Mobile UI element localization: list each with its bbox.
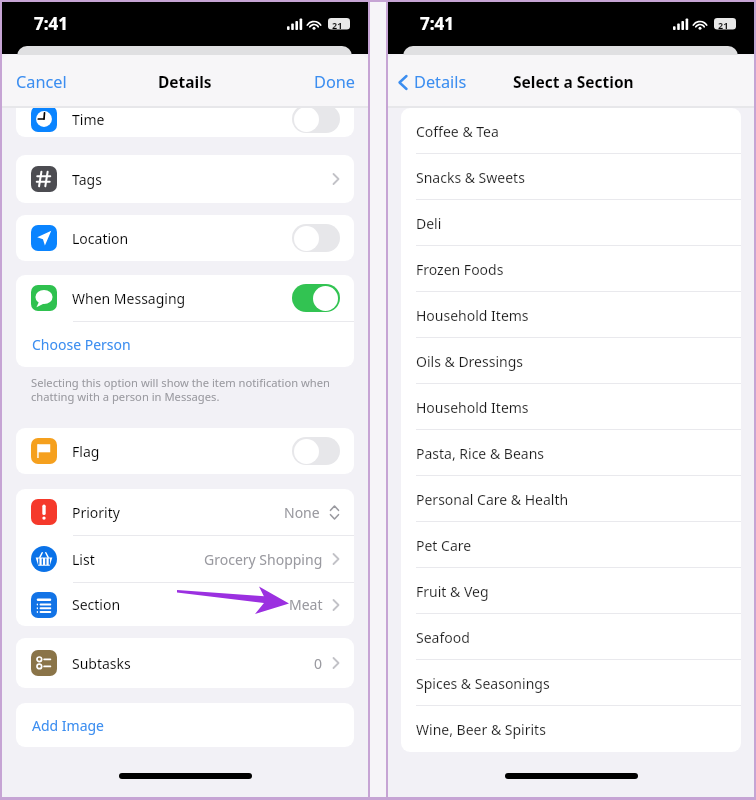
staticText: When Messaging: [72, 289, 186, 308]
staticText: Seafood: [416, 628, 470, 647]
staticText: Cancel: [16, 71, 67, 93]
button[interactable]: Snacks & Sweets: [401, 154, 741, 200]
button[interactable]: Done: [298, 61, 370, 103]
button[interactable]: Cancel: [0, 61, 83, 103]
button[interactable]: Switch off: [292, 224, 340, 252]
button[interactable]: Switch off: [292, 437, 340, 465]
staticText: List: [72, 550, 95, 569]
button[interactable]: Switch on: [292, 284, 340, 312]
staticText: 7:41: [34, 12, 68, 35]
staticText: 21: [718, 19, 729, 31]
button[interactable]: Spices & Seasonings: [401, 660, 741, 706]
staticText: Time: [72, 110, 105, 129]
staticText: Choose Person: [32, 335, 131, 354]
staticText: Section: [72, 595, 121, 614]
button[interactable]: Subtasks: [16, 638, 354, 688]
staticText: Spices & Seasonings: [416, 674, 550, 693]
button[interactable]: Switch off: [292, 108, 340, 133]
button[interactable]: Pet Care: [401, 522, 741, 568]
staticText: Snacks & Sweets: [416, 168, 525, 187]
button[interactable]: Coffee & Tea: [401, 108, 741, 154]
staticText: Location: [72, 229, 129, 248]
button[interactable]: Tags: [16, 155, 354, 203]
staticText: None: [284, 503, 320, 522]
button[interactable]: Seafood: [401, 614, 741, 660]
staticText: Household Items: [416, 398, 529, 417]
staticText: Add Image: [32, 716, 105, 735]
button[interactable]: Fruit & Veg: [401, 568, 741, 614]
staticText: Selecting this option will show the item…: [31, 375, 331, 405]
button[interactable]: Pasta, Rice & Beans: [401, 430, 741, 476]
staticText: Meat: [289, 595, 323, 614]
button[interactable]: Household Items: [401, 384, 741, 430]
staticText: Pet Care: [416, 536, 472, 555]
staticText: Coffee & Tea: [416, 122, 499, 141]
staticText: Details: [414, 71, 467, 93]
staticText: 0: [314, 654, 323, 673]
staticText: Details: [158, 71, 212, 92]
button[interactable]: Details: [386, 61, 479, 103]
button[interactable]: Location: [16, 215, 354, 261]
staticText: Grocery Shopping: [204, 550, 323, 569]
staticText: Priority: [72, 503, 120, 522]
staticText: 7:41: [420, 12, 454, 35]
button[interactable]: Frozen Foods: [401, 246, 741, 292]
staticText: Tags: [72, 170, 102, 189]
staticText: Done: [314, 71, 356, 93]
staticText: Wine, Beer & Spirits: [416, 720, 546, 739]
staticText: Oils & Dressings: [416, 352, 524, 371]
staticText: Fruit & Veg: [416, 582, 489, 601]
button[interactable]: Personal Care & Health: [401, 476, 741, 522]
button[interactable]: Priority: [16, 489, 354, 535]
button[interactable]: Deli: [401, 200, 741, 246]
staticText: Flag: [72, 442, 100, 461]
staticText: Select a Section: [513, 71, 634, 92]
staticText: Frozen Foods: [416, 260, 504, 279]
staticText: Deli: [416, 214, 442, 233]
staticText: Subtasks: [72, 654, 131, 673]
button[interactable]: Choose Person: [16, 322, 354, 367]
button[interactable]: Wine, Beer & Spirits: [401, 706, 741, 752]
button[interactable]: Time: [16, 108, 354, 137]
staticText: Personal Care & Health: [416, 490, 569, 509]
button[interactable]: Household Items: [401, 292, 741, 338]
button[interactable]: Section: [16, 583, 354, 626]
staticText: Household Items: [416, 306, 529, 325]
button[interactable]: List: [16, 536, 354, 582]
staticText: Pasta, Rice & Beans: [416, 444, 545, 463]
button[interactable]: Oils & Dressings: [401, 338, 741, 384]
button[interactable]: When Messaging: [16, 275, 354, 321]
staticText: 21: [332, 19, 343, 31]
button[interactable]: Add Image: [16, 703, 354, 747]
button[interactable]: Flag: [16, 428, 354, 474]
